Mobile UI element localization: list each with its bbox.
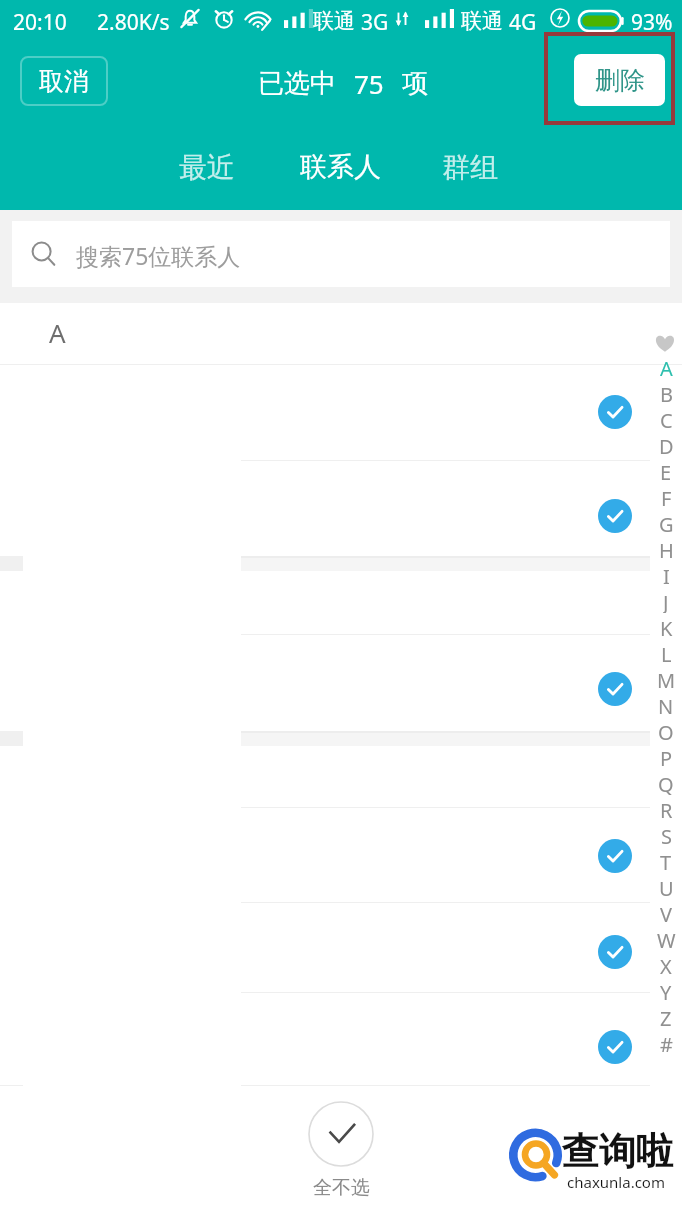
staticText: H [659, 537, 674, 561]
staticText: 已选中 [258, 67, 336, 100]
staticText: 项 [402, 67, 428, 100]
staticText: 93% [631, 8, 673, 37]
staticText: Q [658, 771, 674, 795]
staticText: U [659, 875, 674, 899]
staticText: I [663, 563, 670, 587]
staticText: # [660, 1031, 673, 1055]
staticText: M [657, 667, 676, 691]
staticText: 搜索75位联系人 [76, 240, 241, 271]
staticText: 联通 [313, 8, 355, 34]
staticText: W [657, 927, 676, 951]
staticText: 4G [509, 8, 537, 37]
button[interactable]: Alphabet index [652, 320, 680, 1065]
staticText: chaxunla.com [567, 1172, 665, 1192]
button[interactable]: Selected [598, 935, 632, 969]
button[interactable]: 最近 [157, 143, 257, 191]
staticText: 取消 [39, 66, 89, 97]
button[interactable]: Selected [598, 395, 632, 429]
button[interactable]: 搜索75位联系人 [12, 221, 670, 287]
staticText: 查询啦 [562, 1128, 673, 1175]
staticText: 联通 [461, 8, 503, 34]
staticText: A [49, 315, 66, 350]
staticText: V [660, 901, 672, 925]
staticText: 2.80K/s [97, 8, 170, 37]
staticText: G [659, 511, 674, 535]
staticText: 群组 [442, 150, 498, 185]
button[interactable]: 删除 [574, 54, 665, 106]
button[interactable]: Selected [598, 672, 632, 706]
staticText: J [663, 589, 669, 613]
staticText: 联系人 [300, 150, 381, 184]
staticText: 75 [354, 66, 384, 101]
staticText: 最近 [179, 150, 235, 185]
staticText: N [658, 693, 674, 717]
staticText: D [659, 433, 674, 457]
staticText: Z [660, 1005, 672, 1029]
staticText: R [660, 797, 673, 821]
staticText: C [660, 407, 673, 431]
staticText: K [660, 615, 673, 639]
staticText: Y [660, 979, 672, 1003]
button[interactable]: 联系人 [290, 143, 390, 191]
staticText: F [661, 485, 672, 509]
button[interactable]: Selected [598, 1030, 632, 1064]
staticText: T [660, 849, 672, 873]
staticText: O [658, 719, 674, 743]
staticText: E [660, 459, 672, 483]
staticText: P [660, 745, 673, 769]
staticText: 删除 [595, 65, 645, 96]
button[interactable]: Selected [598, 499, 632, 533]
button[interactable]: 群组 [420, 143, 520, 191]
staticText: L [661, 641, 672, 665]
button[interactable]: Selected [598, 839, 632, 873]
staticText: A [660, 355, 673, 379]
staticText: X [660, 953, 672, 977]
staticText: B [660, 381, 673, 405]
button[interactable]: 取消 [20, 56, 108, 106]
button[interactable] [308, 1101, 374, 1167]
staticText: S [661, 823, 672, 847]
staticText: 3G [361, 8, 389, 37]
staticText: 20:10 [13, 8, 67, 37]
staticText: 全不选 [313, 1176, 370, 1200]
